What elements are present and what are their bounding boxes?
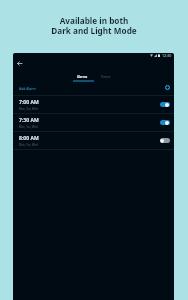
button[interactable]: 8:00 AM [13,132,174,150]
staticText: Alarms [77,75,88,79]
button[interactable]: Toggle alarm [160,120,170,125]
button[interactable]: Timers [94,68,117,82]
staticText: 12:30 [162,53,172,58]
staticText: Available in both Dark and Light Mode [0,15,188,36]
button[interactable]: Add Alarm [13,84,174,96]
button[interactable]: 7:30 AM [13,114,174,132]
staticText: Mon, Tue, Wed [19,143,38,147]
staticText: Mon, Tue, Wed [19,125,38,129]
button[interactable]: Toggle alarm [160,102,170,107]
staticText: Add Alarm [19,86,36,91]
button[interactable]: 7:00 AM [13,96,174,114]
button[interactable]: Toggle alarm [160,138,170,143]
button[interactable]: Back [14,58,25,69]
staticText: 7:30 AM [19,117,39,124]
staticText: Timers [101,75,111,79]
button[interactable]: Alarms [71,68,94,82]
staticText: Mon, Tue, Wed [19,107,38,111]
staticText: 7:00 AM [19,99,39,106]
staticText: 8:00 AM [19,135,39,142]
button[interactable]: Add alarm [165,85,170,90]
